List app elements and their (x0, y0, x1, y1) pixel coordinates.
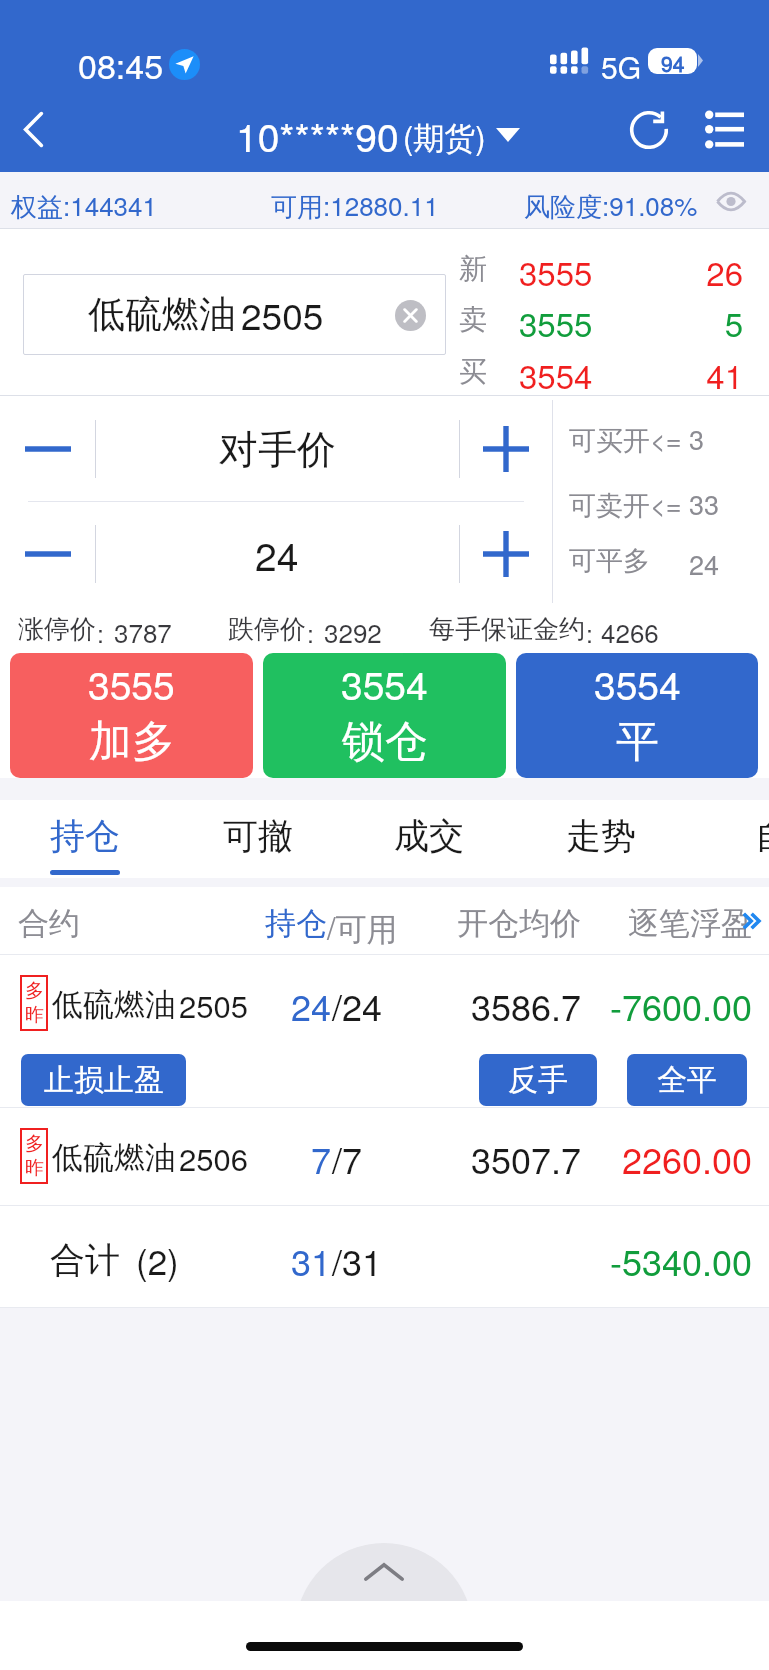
staticText: /7 (332, 1133, 363, 1185)
staticText: 新 (459, 251, 487, 286)
button[interactable]: Refresh (613, 98, 685, 172)
staticText: 5G (601, 45, 642, 88)
staticText: 3554 (341, 655, 428, 711)
staticText: 卖 (459, 302, 487, 337)
staticText: 2505 (179, 982, 248, 1026)
button[interactable]: 可撤 (178, 800, 338, 872)
button[interactable]: Increase 对手价 (460, 396, 552, 502)
staticText: 买 (459, 354, 487, 389)
staticText: 合约 (18, 904, 80, 943)
staticText: 2260.00 (552, 1133, 752, 1185)
staticText: 加多 (89, 715, 175, 769)
button[interactable]: 3554 (263, 653, 506, 778)
staticText: 昨 (25, 1003, 44, 1027)
button[interactable]: 持仓 (5, 800, 165, 872)
staticText: /可用 (327, 904, 398, 949)
staticText: /31 (332, 1235, 383, 1287)
staticText: 2506 (179, 1135, 248, 1179)
button[interactable] (0, 1206, 769, 1307)
button[interactable] (0, 956, 769, 1050)
staticText: 24 (291, 980, 332, 1032)
button[interactable]: Increase 24 (460, 501, 552, 607)
staticText: 涨停价 (18, 613, 96, 646)
staticText: 可买开<= (569, 419, 682, 458)
staticText: 跌停价 (228, 613, 306, 646)
staticText: 持仓 (265, 904, 327, 943)
staticText: 每手保证金约 (429, 613, 585, 646)
button[interactable]: 10*****90 (236, 98, 520, 172)
button[interactable]: Menu (693, 98, 763, 172)
staticText: 可卖开<= (569, 484, 682, 523)
button[interactable]: Back (0, 96, 70, 166)
staticText: 成交 (394, 814, 464, 858)
staticText: 2505 (241, 288, 324, 341)
button[interactable]: Expand panel (295, 1543, 473, 1601)
staticText: : (307, 614, 314, 650)
button[interactable]: 自 (692, 800, 769, 872)
staticText: 合计 (50, 1238, 120, 1282)
staticText: -7600.00 (552, 980, 752, 1032)
staticText: (2) (136, 1235, 179, 1285)
staticText: 昨 (25, 1156, 44, 1180)
staticText: 41 (643, 351, 743, 398)
button[interactable] (0, 1107, 769, 1205)
staticText: 止损止盈 (44, 1061, 164, 1099)
staticText: -5340.00 (552, 1235, 752, 1287)
staticText: 持仓 (50, 814, 120, 858)
staticText: 走势 (566, 814, 636, 858)
button[interactable]: Clear (388, 293, 432, 337)
staticText: 33 (689, 484, 720, 523)
staticText: 08:45 (78, 40, 164, 89)
staticText: 全平 (657, 1061, 717, 1099)
staticText: 多 (25, 979, 44, 1003)
staticText: 低硫燃油 (88, 291, 236, 338)
button[interactable]: 成交 (349, 800, 509, 872)
staticText: : (97, 614, 104, 650)
button[interactable]: 3554 (516, 653, 758, 778)
staticText: 3 (689, 419, 705, 458)
staticText: /24 (332, 980, 383, 1032)
button[interactable]: Toggle balance visibility (708, 180, 753, 222)
button[interactable]: 全平 (627, 1054, 747, 1106)
staticText: 多 (25, 1132, 44, 1156)
button[interactable]: More columns (720, 890, 769, 954)
button[interactable]: 3555 (10, 653, 253, 778)
staticText: 3555 (519, 248, 593, 295)
staticText: 5 (643, 299, 743, 346)
staticText: 3292 (324, 613, 382, 650)
staticText: 可平多 (569, 544, 650, 578)
staticText: 锁仓 (342, 715, 428, 769)
button[interactable]: 反手 (479, 1054, 597, 1106)
staticText: 权益:144341 (11, 186, 157, 224)
staticText: 可用:12880.11 (271, 186, 439, 224)
staticText: 反手 (508, 1061, 568, 1099)
button[interactable]: 低硫燃油 (23, 274, 446, 355)
staticText: 3586.7 (400, 980, 581, 1032)
staticText: 3554 (594, 655, 681, 711)
staticText: 3507.7 (400, 1133, 581, 1185)
staticText: 逐笔浮盈 (628, 904, 752, 943)
staticText: 7 (311, 1133, 332, 1185)
staticText: 自 (755, 814, 769, 858)
staticText: 24 (689, 544, 720, 583)
staticText: 低硫燃油 (52, 985, 176, 1024)
staticText: 3555 (88, 655, 175, 711)
staticText: 3555 (519, 299, 593, 346)
button[interactable]: Decrease 对手价 (0, 396, 95, 502)
staticText: 3554 (519, 351, 593, 398)
button[interactable]: 止损止盈 (21, 1054, 186, 1106)
staticText: 94 (661, 48, 685, 74)
staticText: 10*****90 (236, 107, 399, 163)
staticText: 低硫燃油 (52, 1138, 176, 1177)
staticText: 3787 (114, 613, 172, 650)
staticText: 可撤 (223, 814, 293, 858)
staticText: 对手价 (219, 425, 336, 474)
staticText: : (586, 614, 593, 650)
staticText: 平 (616, 715, 659, 769)
button[interactable]: Decrease 24 (0, 501, 95, 607)
button[interactable]: 走势 (521, 800, 681, 872)
staticText: 26 (643, 248, 743, 295)
staticText: 风险度:91.08% (524, 186, 698, 224)
staticText: 4266 (601, 613, 659, 650)
staticText: 24 (255, 526, 299, 582)
